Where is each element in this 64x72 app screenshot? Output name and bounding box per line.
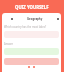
- staticText: Answer: [4, 42, 14, 46]
- staticText: Which country has the most lakes?: [4, 25, 47, 29]
- staticText: QUIZ YOURSELF: [15, 4, 49, 10]
- button[interactable]: [4, 58, 59, 65]
- staticText: Geography: [27, 17, 43, 21]
